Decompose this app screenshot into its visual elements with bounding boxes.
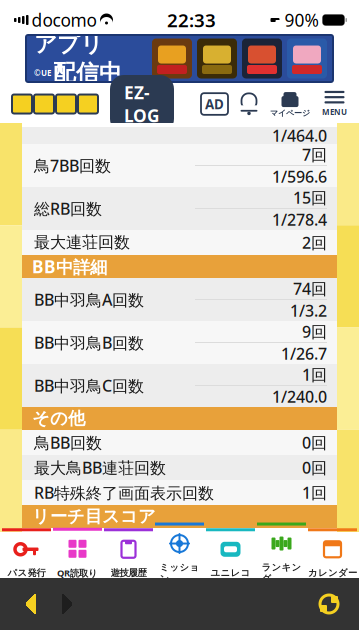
staticText: 1回 <box>302 482 327 503</box>
staticText: 鳥7BB回数 <box>34 155 111 176</box>
button[interactable]: ユニレコ <box>206 532 255 578</box>
staticText: 配信中 <box>53 59 122 87</box>
staticText: ランキング <box>261 561 301 584</box>
button[interactable]: カレンダー <box>308 532 357 578</box>
staticText: docomo <box>31 8 96 31</box>
staticText: BB中羽鳥C回数 <box>34 375 144 396</box>
button[interactable]: ミッション <box>155 532 204 578</box>
button[interactable]: EZ-LOG <box>98 75 174 133</box>
staticText: 鳥BB回数 <box>34 432 102 453</box>
button[interactable]: 戻る <box>0 594 36 614</box>
staticText: 1/240.0 <box>272 386 327 407</box>
button[interactable]: 再読み込み <box>317 592 359 616</box>
staticText: BB中詳細 <box>32 255 107 278</box>
staticText: 9回 <box>302 321 327 342</box>
button[interactable]: ユニメモ ホーム <box>0 93 98 114</box>
staticText: EZ-LOG <box>124 81 160 127</box>
staticText: 1/596.6 <box>272 166 327 187</box>
staticText: 0回 <box>302 457 327 478</box>
button[interactable]: 遊技履歴 <box>104 532 153 578</box>
staticText: カレンダー <box>308 567 357 579</box>
staticText: BB中羽鳥B回数 <box>34 332 144 353</box>
staticText: リーチ目スコア <box>32 506 156 527</box>
staticText: RB特殊終了画面表示回数 <box>34 482 214 503</box>
button[interactable]: ランキング <box>257 532 306 578</box>
staticText: 2回 <box>302 232 327 253</box>
staticText: パス発行 <box>7 567 45 579</box>
staticText: AD <box>205 95 224 113</box>
staticText: 1/26.7 <box>281 343 327 364</box>
button[interactable]: QR読取り <box>53 532 102 578</box>
staticText: 1/278.4 <box>272 209 327 230</box>
staticText: 74回 <box>293 278 327 299</box>
staticText: 15回 <box>293 187 327 208</box>
staticText: その他 <box>32 408 85 429</box>
staticText: ミッション <box>159 561 199 584</box>
staticText: マイページ <box>270 108 310 118</box>
staticText: 総RB回数 <box>34 198 102 219</box>
button[interactable]: AD <box>201 93 228 115</box>
staticText: アプリ <box>34 30 103 58</box>
staticText: 1/3.2 <box>290 300 327 321</box>
staticText: 最大鳥BB連荘回数 <box>34 457 166 478</box>
staticText: ユニレコ <box>210 567 250 579</box>
staticText: ©UE <box>34 68 51 78</box>
staticText: 7回 <box>302 144 327 165</box>
staticText: 90% <box>284 8 318 31</box>
button[interactable]: メニュー <box>310 91 359 117</box>
staticText: MENU <box>322 106 347 117</box>
staticText: 22:33 <box>167 8 216 32</box>
button[interactable]: 進む <box>36 594 72 614</box>
staticText: 最大連荘回数 <box>34 233 130 252</box>
staticText: 1/464.0 <box>272 125 327 146</box>
button[interactable]: マイページ <box>258 90 310 118</box>
button[interactable]: アプリ配信中 広告 <box>0 35 359 82</box>
staticText: 1回 <box>302 364 327 385</box>
staticText: QR読取り <box>57 567 98 579</box>
staticText: 0回 <box>302 432 327 453</box>
staticText: 遊技履歴 <box>110 567 146 579</box>
staticText: BB中羽鳥A回数 <box>34 289 144 310</box>
button[interactable]: お知らせ <box>228 93 258 115</box>
button[interactable]: パス発行 <box>2 532 51 578</box>
